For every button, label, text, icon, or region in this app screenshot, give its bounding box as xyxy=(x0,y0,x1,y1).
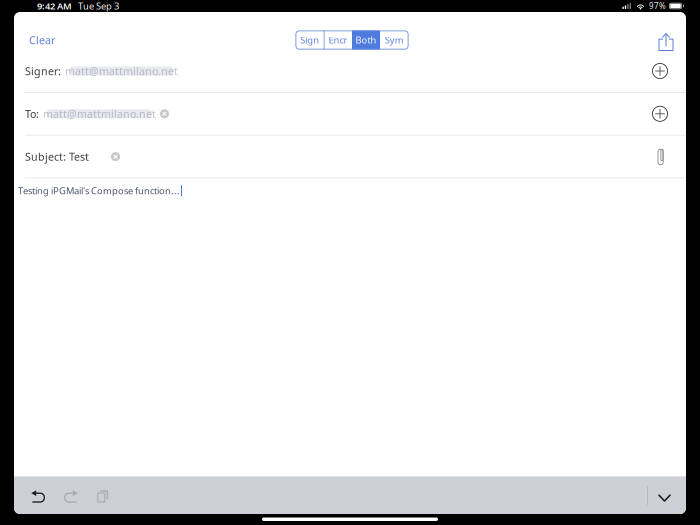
staticText: Both xyxy=(356,34,377,46)
staticText: Encr xyxy=(328,34,347,46)
button[interactable]: Clear text xyxy=(89,143,125,170)
staticText: Testing iPGMail's Compose function... xyxy=(18,184,180,197)
staticText: 9:42 AM xyxy=(37,0,72,12)
button[interactable]: Paste xyxy=(85,477,117,514)
staticText: Sign xyxy=(300,34,319,46)
button[interactable]: Attach file xyxy=(648,141,674,172)
button[interactable]: Hide keyboard xyxy=(648,477,686,514)
staticText: Sym xyxy=(385,34,404,46)
button[interactable]: Both xyxy=(352,30,380,49)
staticText: To: xyxy=(25,107,39,121)
button[interactable]: Clear xyxy=(14,26,65,54)
staticText: Signer: xyxy=(25,64,61,78)
button[interactable]: Redo xyxy=(57,477,85,514)
button[interactable]: Sym xyxy=(380,30,408,49)
button[interactable]: Share xyxy=(648,25,686,54)
staticText: 97% xyxy=(649,1,666,11)
button[interactable]: Add recipient xyxy=(646,56,674,86)
button[interactable]: Clear text xyxy=(156,100,174,127)
button[interactable]: Encr xyxy=(324,30,352,49)
staticText: Clear xyxy=(29,33,55,47)
staticText: Tue Sep 3 xyxy=(72,0,119,12)
button[interactable]: Add recipient xyxy=(646,99,674,129)
button[interactable]: Undo xyxy=(28,477,57,514)
button[interactable]: Sign xyxy=(296,30,324,49)
staticText: matt@mattmilano.net xyxy=(43,107,156,121)
staticText: Subject: Test xyxy=(25,149,89,164)
staticText: matt@mattmilano.net xyxy=(65,64,178,78)
